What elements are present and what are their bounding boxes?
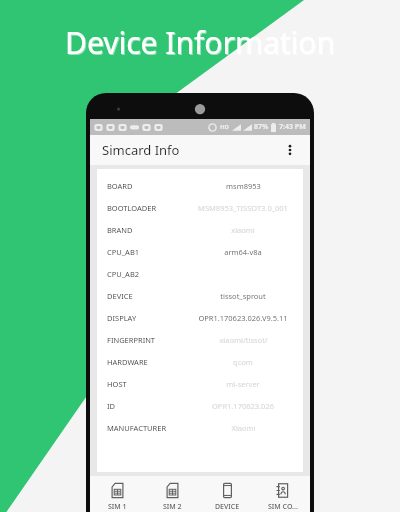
- staticText: SIM 1: [108, 502, 127, 512]
- staticText: OPR1.170623.026.V9.5.11: [198, 313, 288, 323]
- button[interactable]: DEVICE: [200, 476, 255, 512]
- button[interactable]: CPU_AB2: [107, 263, 293, 285]
- staticText: DEVICE: [107, 291, 193, 301]
- staticText: Xiaomi: [231, 423, 256, 433]
- button[interactable]: ID: [107, 395, 293, 417]
- staticText: Device Information: [66, 23, 337, 64]
- button[interactable]: BOARD: [107, 175, 293, 197]
- button[interactable]: HOST: [107, 373, 293, 395]
- staticText: MSM8953_TISSOT3.0_001: [198, 203, 288, 213]
- button[interactable]: BRAND: [107, 219, 293, 241]
- button[interactable]: FINGERPRINT: [107, 329, 293, 351]
- staticText: CPU_AB2: [107, 269, 193, 279]
- button[interactable]: HARDWARE: [107, 351, 293, 373]
- button[interactable]: BOOTLOADER: [107, 197, 293, 219]
- staticText: xiaomi: [231, 225, 255, 235]
- button[interactable]: More options: [278, 138, 302, 162]
- staticText: arm64-v8a: [224, 247, 262, 257]
- staticText: ID: [107, 401, 193, 411]
- button[interactable]: SIM CO...: [255, 476, 310, 512]
- button[interactable]: SIM 1: [90, 476, 145, 512]
- button[interactable]: MANUFACTURER: [107, 417, 293, 439]
- staticText: tissot_sprout: [220, 291, 266, 301]
- staticText: MANUFACTURER: [107, 423, 193, 433]
- staticText: BRAND: [107, 225, 193, 235]
- button[interactable]: CPU_AB1: [107, 241, 293, 263]
- staticText: SIM CO...: [268, 502, 298, 512]
- staticText: xiaomi/tissot/: [219, 335, 268, 345]
- staticText: HD: [220, 123, 229, 131]
- staticText: Simcard Info: [102, 141, 180, 159]
- staticText: SIM 2: [163, 502, 182, 512]
- staticText: BOARD: [107, 181, 193, 191]
- staticText: BOOTLOADER: [107, 203, 193, 213]
- staticText: msm8953: [226, 181, 261, 191]
- button[interactable]: DEVICE: [107, 285, 293, 307]
- staticText: CPU_AB1: [107, 247, 193, 257]
- staticText: DEVICE: [215, 502, 240, 512]
- staticText: 7:43 PM: [279, 122, 306, 132]
- staticText: DISPLAY: [107, 313, 193, 323]
- staticText: Device Information: [65, 22, 336, 63]
- staticText: mi-server: [226, 379, 260, 389]
- button[interactable]: DISPLAY: [107, 307, 293, 329]
- staticText: FINGERPRINT: [107, 335, 193, 345]
- staticText: HARDWARE: [107, 357, 193, 367]
- staticText: OPR1.170623.026: [212, 401, 274, 411]
- staticText: 87%: [254, 122, 269, 132]
- staticText: HOST: [107, 379, 193, 389]
- button[interactable]: SIM 2: [145, 476, 200, 512]
- staticText: qcom: [233, 357, 253, 367]
